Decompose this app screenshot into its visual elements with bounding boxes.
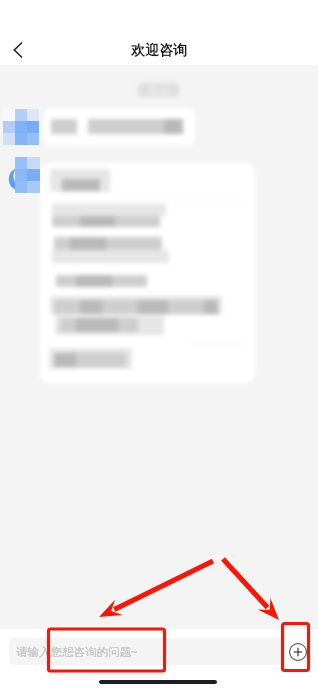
button[interactable]	[40, 163, 255, 383]
button[interactable]: Back	[3, 35, 33, 65]
button[interactable]: 请输入您想咨询的问题~	[9, 638, 283, 665]
button[interactable]: More options	[286, 640, 309, 663]
staticText: 欢迎咨询	[131, 42, 187, 60]
button[interactable]	[44, 109, 195, 145]
staticText: 请输入您想咨询的问题~	[16, 644, 138, 660]
